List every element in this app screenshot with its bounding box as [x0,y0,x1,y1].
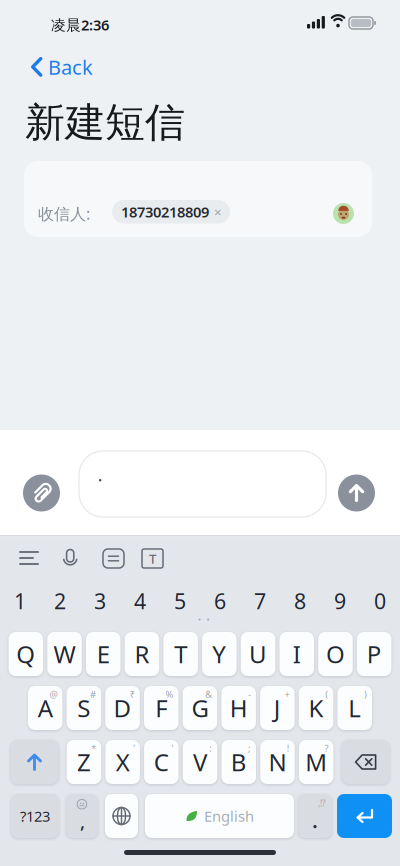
button[interactable]: M [299,740,333,784]
staticText: ' [133,742,135,754]
button[interactable]: , [66,794,98,838]
button[interactable] [79,451,326,517]
button[interactable]: 1 [0,586,40,616]
staticText: - [248,688,251,700]
staticText: 3 [94,587,106,615]
staticText: ! [287,742,290,754]
button[interactable]: R [125,632,159,676]
button[interactable] [10,740,58,784]
staticText: A [38,692,53,724]
staticText: * [91,742,96,754]
button[interactable]: G [183,686,217,730]
staticText: 收信人: [38,203,90,224]
button[interactable]: A [28,686,62,730]
button[interactable] [24,161,372,237]
staticText: 18730218809 [121,202,209,221]
staticText: : [209,742,212,754]
button[interactable]: 2 [40,586,80,616]
staticText: Z [77,746,91,778]
button[interactable] [337,794,392,838]
button[interactable]: T [142,549,163,568]
button[interactable]: H [221,686,256,730]
button[interactable] [103,549,124,568]
staticText: F [155,692,167,724]
staticText: T [149,550,156,567]
staticText: ) [364,688,367,700]
staticText: X [116,746,130,778]
button[interactable]: ?123 [11,794,59,838]
button[interactable]: English [145,794,294,838]
staticText: 7 [254,587,266,615]
button[interactable] [342,740,390,784]
button[interactable] [20,551,38,565]
button[interactable]: V [183,740,217,784]
button[interactable]: ,!? [298,794,332,838]
button[interactable]: 0 [360,586,400,616]
button[interactable]: Back [31,53,93,81]
button[interactable]: B [221,740,256,784]
staticText: ( [325,688,328,700]
staticText: O [326,638,345,670]
staticText: # [90,688,96,700]
button[interactable]: T [163,632,198,676]
button[interactable]: I [279,632,314,676]
button[interactable]: X [105,740,140,784]
button[interactable]: 4 [120,586,160,616]
button[interactable]: Q [9,632,43,676]
staticText: C [154,746,169,778]
button[interactable] [23,474,60,511]
button[interactable]: 18730218809 [112,200,230,223]
staticText: @ [49,688,57,700]
staticText: M [305,746,327,778]
button[interactable]: Y [202,632,237,676]
button[interactable]: P [357,632,391,676]
staticText: H [230,692,248,724]
button[interactable]: 7 [240,586,280,616]
button[interactable]: 6 [200,586,240,616]
button[interactable]: U [241,632,275,676]
staticText: & [205,688,212,700]
button[interactable]: F [144,686,178,730]
staticText: ,!? [318,798,325,809]
staticText: E [97,638,110,670]
button[interactable]: L [337,686,372,730]
staticText: B [231,746,247,778]
button[interactable]: J [260,686,295,730]
staticText: V [193,746,207,778]
staticText: 5 [174,587,186,615]
staticText: L [348,692,361,724]
button[interactable]: N [260,740,295,784]
button[interactable]: E [86,632,120,676]
button[interactable]: W [47,632,82,676]
staticText: ₹ [130,688,135,700]
button[interactable]: Z [67,740,101,784]
staticText: U [249,638,267,670]
staticText: W [54,638,76,670]
button[interactable] [333,203,354,224]
staticText: R [134,638,149,670]
staticText: , [80,809,85,834]
staticText: 2 [54,587,66,615]
staticText: 0 [374,587,386,615]
staticText: % [165,688,173,700]
button[interactable]: K [299,686,333,730]
button[interactable] [338,474,375,511]
button[interactable]: D [105,686,140,730]
button[interactable]: 8 [280,586,320,616]
button[interactable]: 3 [80,586,120,616]
button[interactable]: S [67,686,101,730]
staticText: ; [248,742,251,754]
button[interactable]: C [144,740,179,784]
staticText: Back [48,54,93,80]
staticText: N [268,746,286,778]
button[interactable]: 9 [320,586,360,616]
staticText: English [204,806,254,826]
staticText: D [114,692,132,724]
button[interactable] [62,549,78,566]
staticText: K [308,692,323,724]
staticText: ? [324,742,328,754]
button[interactable]: O [318,632,353,676]
button[interactable] [105,794,138,838]
button[interactable]: 5 [160,586,200,616]
staticText: Q [16,638,35,670]
